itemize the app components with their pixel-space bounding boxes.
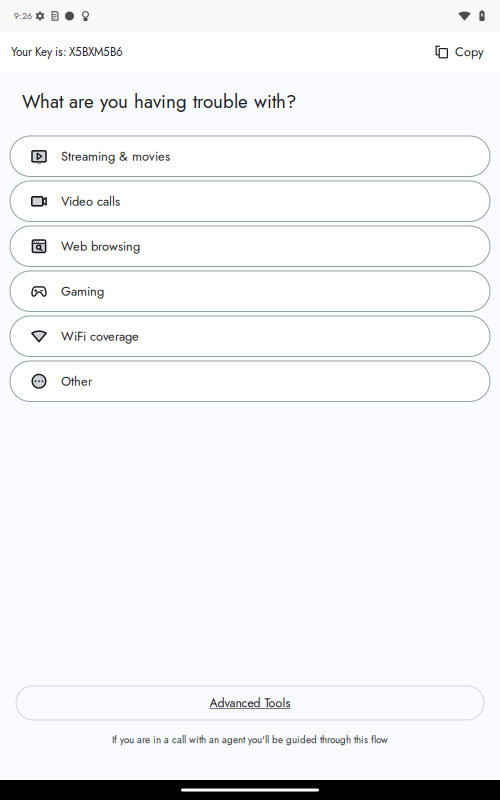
staticText: Copy	[455, 43, 484, 61]
button[interactable]: Gaming	[10, 271, 490, 311]
button[interactable]: Other	[10, 361, 490, 401]
button[interactable]: WiFi coverage	[10, 316, 490, 356]
button[interactable]: Streaming & movies	[10, 136, 490, 176]
staticText: Video calls	[61, 192, 120, 210]
staticText: WiFi coverage	[61, 327, 139, 345]
staticText: Advanced Tools	[209, 694, 290, 712]
button[interactable]: Web browsing	[10, 226, 490, 266]
staticText: Streaming & movies	[61, 147, 170, 165]
staticText: Other	[61, 372, 92, 390]
staticText: Gaming	[61, 282, 104, 300]
button[interactable]: Advanced Tools	[16, 686, 484, 720]
staticText: What are you having trouble with?	[22, 88, 296, 115]
staticText: Your Key is: X5BXM5B6	[11, 44, 123, 60]
button[interactable]: Copy	[435, 37, 484, 67]
staticText: If you are in a call with an agent you'l…	[112, 733, 388, 747]
staticText: Web browsing	[61, 237, 140, 255]
button[interactable]: Video calls	[10, 181, 490, 221]
staticText: 9:26	[14, 10, 32, 22]
